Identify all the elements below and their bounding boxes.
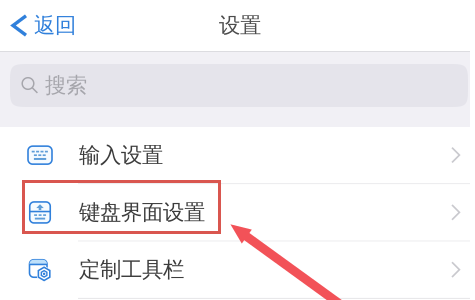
- staticText: 设置: [219, 12, 261, 39]
- staticText: 输入设置: [79, 142, 163, 168]
- button[interactable]: 返回: [0, 0, 88, 50]
- button[interactable]: 输入设置: [0, 127, 470, 183]
- button[interactable]: 键盘界面设置: [0, 184, 470, 241]
- staticText: 键盘界面设置: [79, 199, 205, 225]
- staticText: 定制工具栏: [79, 257, 184, 283]
- button[interactable]: 定制工具栏: [0, 242, 470, 298]
- staticText: 返回: [34, 12, 76, 39]
- staticText: 搜索: [45, 72, 87, 99]
